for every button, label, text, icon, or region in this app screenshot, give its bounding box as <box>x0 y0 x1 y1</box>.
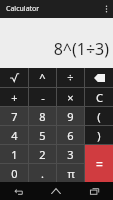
staticText: 2 <box>39 147 46 162</box>
staticText: 9 <box>67 109 74 124</box>
button[interactable]: 0 <box>0 164 28 182</box>
staticText: Calculator <box>6 4 40 14</box>
button[interactable]: 4 <box>0 126 28 144</box>
staticText: 8^(1÷3) <box>53 38 109 60</box>
staticText: + <box>11 90 18 105</box>
staticText: 4 <box>11 128 18 143</box>
staticText: × <box>67 90 74 105</box>
button[interactable]: - <box>29 88 56 106</box>
button[interactable]: π <box>57 164 84 182</box>
button[interactable]: ^ <box>29 68 56 87</box>
button[interactable]: 1 <box>0 145 28 163</box>
button[interactable]: 3 <box>57 145 84 163</box>
button[interactable]: Home <box>37 182 75 200</box>
staticText: C <box>96 90 103 105</box>
button[interactable]: = <box>85 145 113 182</box>
staticText: ) <box>97 128 101 143</box>
button[interactable]: ÷ <box>57 68 84 87</box>
button[interactable]: 5 <box>29 126 56 144</box>
staticText: 0 <box>11 166 18 181</box>
staticText: - <box>41 90 45 105</box>
staticText: = <box>96 156 103 172</box>
button[interactable]: 6 <box>57 126 84 144</box>
button[interactable]: Back <box>0 182 37 200</box>
button[interactable]: . <box>29 164 56 182</box>
button[interactable]: × <box>57 88 84 106</box>
button[interactable]: Square root <box>0 68 28 87</box>
button[interactable]: + <box>0 88 28 106</box>
button[interactable]: Backspace <box>85 68 113 87</box>
staticText: ( <box>97 109 101 124</box>
staticText: ^ <box>39 70 46 85</box>
staticText: 6 <box>67 128 74 143</box>
button[interactable]: 2 <box>29 145 56 163</box>
staticText: ÷ <box>67 70 74 85</box>
staticText: π <box>67 166 75 181</box>
staticText: 1 <box>11 147 18 162</box>
staticText: 7 <box>11 109 18 124</box>
button[interactable]: 9 <box>57 107 84 125</box>
button[interactable]: Recents <box>75 182 113 200</box>
staticText: 5 <box>39 128 46 143</box>
staticText: . <box>41 166 44 181</box>
button[interactable]: C <box>85 88 113 106</box>
button[interactable]: 8 <box>29 107 56 125</box>
button[interactable]: ) <box>85 126 113 144</box>
staticText: 3 <box>67 147 74 162</box>
button[interactable]: ( <box>85 107 113 125</box>
button[interactable]: More options <box>99 0 113 18</box>
button[interactable]: 7 <box>0 107 28 125</box>
staticText: 8 <box>39 109 46 124</box>
